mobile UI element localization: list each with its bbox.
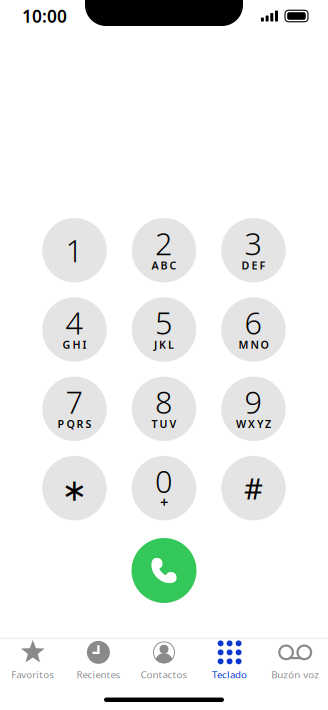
- staticText: +: [160, 492, 168, 512]
- staticText: 10:00: [22, 4, 67, 27]
- button[interactable]: 4: [31, 297, 118, 362]
- button[interactable]: 7: [31, 377, 118, 441]
- staticText: A B C: [151, 258, 176, 272]
- staticText: #: [244, 469, 263, 508]
- staticText: ∗: [61, 473, 87, 507]
- button[interactable]: Favoritos: [0, 638, 66, 682]
- staticText: Favoritos: [11, 668, 54, 681]
- staticText: 2: [155, 223, 173, 264]
- staticText: D E F: [241, 258, 265, 272]
- staticText: 3: [244, 223, 262, 264]
- staticText: Teclado: [212, 668, 247, 681]
- button[interactable]: Teclado: [197, 638, 262, 682]
- button[interactable]: #: [210, 456, 297, 520]
- staticText: 5: [155, 302, 173, 343]
- staticText: 9: [244, 381, 262, 422]
- staticText: W X Y Z: [236, 417, 271, 431]
- staticText: P Q R S: [57, 417, 91, 431]
- button[interactable]: 1: [31, 218, 118, 282]
- staticText: 7: [65, 381, 83, 422]
- button[interactable]: 0: [121, 456, 207, 520]
- staticText: 0: [155, 461, 173, 501]
- staticText: 1: [65, 230, 83, 271]
- button[interactable]: Contactos: [131, 638, 197, 682]
- staticText: J K L: [154, 337, 174, 352]
- button[interactable]: 6: [210, 297, 297, 362]
- staticText: 6: [244, 302, 262, 343]
- button[interactable]: Llamar: [131, 538, 196, 603]
- staticText: Buzón voz: [271, 668, 319, 681]
- button[interactable]: 8: [121, 377, 207, 441]
- staticText: Recientes: [76, 668, 120, 681]
- staticText: T U V: [151, 417, 176, 431]
- staticText: 4: [65, 302, 83, 343]
- button[interactable]: ∗: [31, 456, 118, 520]
- button[interactable]: 5: [121, 297, 207, 362]
- staticText: 8: [155, 381, 173, 422]
- button[interactable]: Buzón voz: [262, 638, 328, 682]
- button[interactable]: 9: [210, 377, 297, 441]
- button[interactable]: 2: [121, 218, 207, 282]
- button[interactable]: Recientes: [66, 638, 131, 682]
- staticText: M N O: [238, 337, 268, 352]
- button[interactable]: 3: [210, 218, 297, 282]
- staticText: Contactos: [140, 668, 187, 681]
- staticText: G H I: [62, 337, 86, 352]
